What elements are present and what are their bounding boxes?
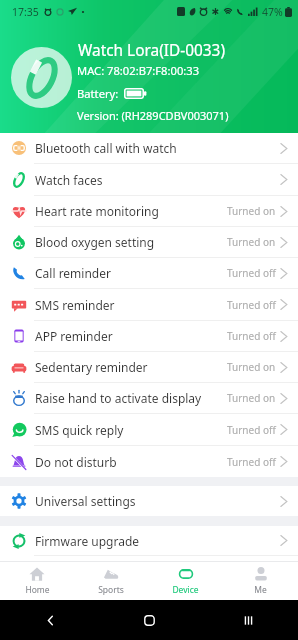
button[interactable]: Sedentary reminder	[0, 352, 298, 383]
button[interactable]: Me	[223, 562, 298, 600]
staticText: SMS quick reply	[35, 422, 124, 438]
staticText: Blood oxygen setting	[35, 234, 155, 250]
staticText: APP reminder	[35, 328, 113, 344]
staticText: 47%	[262, 5, 283, 19]
button[interactable]: Watch faces	[0, 164, 298, 196]
button[interactable]: Home	[100, 600, 199, 640]
button[interactable]: Device	[148, 562, 223, 600]
button[interactable]: Recent apps	[199, 600, 298, 640]
staticText: Turned off	[227, 266, 276, 280]
staticText: Do not disturb	[35, 454, 117, 470]
staticText: Turned off	[227, 423, 276, 437]
staticText: Turned on	[227, 360, 276, 374]
button[interactable]: Back	[0, 600, 100, 640]
staticText: Turned off	[227, 298, 276, 312]
staticText: Turned on	[227, 391, 276, 405]
button[interactable]: SMS reminder	[0, 289, 298, 321]
staticText: Me	[254, 584, 267, 596]
staticText: Turned off	[227, 455, 276, 469]
staticText: Home	[25, 584, 50, 596]
staticText: Sports	[98, 584, 124, 596]
button[interactable]: APP reminder	[0, 321, 298, 352]
button[interactable]: Do not disturb	[0, 446, 298, 477]
staticText: Universal settings	[35, 493, 136, 509]
staticText: Turned off	[227, 329, 276, 343]
staticText: Call reminder	[35, 265, 111, 281]
staticText: Device	[172, 584, 199, 596]
button[interactable]: Heart rate monitoring	[0, 196, 298, 227]
button[interactable]: Home	[0, 562, 74, 600]
button[interactable]: Raise hand to activate display	[0, 383, 298, 414]
button[interactable]: SMS quick reply	[0, 414, 298, 446]
button[interactable]: Sports	[74, 562, 148, 600]
staticText: Version: (RH289CDBV003071)	[77, 108, 229, 123]
staticText: Raise hand to activate display	[35, 390, 202, 406]
button[interactable]: Blood oxygen setting	[0, 227, 298, 258]
staticText: Turned on	[227, 204, 276, 218]
staticText: Watch faces	[35, 172, 103, 188]
button[interactable]: Universal settings	[0, 486, 298, 516]
staticText: Turned on	[227, 235, 276, 249]
button[interactable]: Bluetooth call with watch	[0, 133, 298, 164]
staticText: MAC: 78:02:B7:F8:00:33	[77, 63, 200, 78]
button[interactable]: Firmware upgrade	[0, 526, 298, 556]
staticText: Bluetooth call with watch	[35, 140, 177, 156]
staticText: Watch Lora(ID-0033)	[78, 40, 226, 61]
staticText: Heart rate monitoring	[35, 203, 159, 219]
staticText: Sedentary reminder	[35, 359, 148, 375]
staticText: Battery:	[77, 86, 119, 101]
staticText: 17:35	[12, 5, 39, 19]
staticText: SMS reminder	[35, 297, 115, 313]
button[interactable]: Call reminder	[0, 258, 298, 289]
staticText: Firmware upgrade	[35, 533, 140, 549]
